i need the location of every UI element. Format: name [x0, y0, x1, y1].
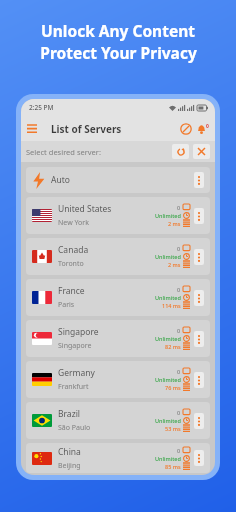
button[interactable]: Brazil: [26, 402, 210, 439]
staticText: 114 ms: [162, 302, 181, 309]
staticText: Unlimited: [155, 417, 181, 424]
staticText: São Paulo: [58, 423, 91, 433]
staticText: Frankfurt: [58, 382, 89, 392]
staticText: Unlimited: [155, 335, 181, 342]
staticText: 2 ms: [168, 261, 181, 268]
button[interactable]: Canada: [26, 238, 210, 275]
staticText: Unlimited: [155, 455, 181, 462]
staticText: Singapore: [58, 326, 99, 338]
staticText: 76 ms: [165, 384, 181, 391]
button[interactable]: Refresh: [172, 144, 189, 159]
button[interactable]: Auto: [26, 167, 210, 193]
staticText: Unlimited: [155, 253, 181, 260]
button[interactable]: More options: [194, 413, 204, 429]
button[interactable]: Notifications: [197, 123, 215, 134]
staticText: Unlimited: [155, 212, 181, 219]
staticText: New York: [58, 218, 89, 228]
staticText: Germany: [58, 367, 95, 379]
button[interactable]: China: [26, 443, 210, 473]
staticText: 0: [177, 245, 181, 252]
staticText: 2:25 PM: [29, 103, 54, 112]
staticText: Auto: [51, 174, 70, 186]
staticText: 0: [177, 327, 181, 334]
button[interactable]: More options: [194, 290, 204, 306]
staticText: United States: [58, 203, 112, 215]
staticText: Select desired server:: [26, 147, 101, 157]
staticText: Paris: [58, 300, 75, 310]
staticText: Protect Your Privacy: [40, 42, 197, 63]
button[interactable]: United States: [26, 197, 210, 234]
staticText: 0: [177, 286, 181, 293]
staticText: Brazil: [58, 408, 81, 420]
staticText: 0: [177, 368, 181, 375]
staticText: 85 ms: [165, 463, 181, 470]
staticText: Singapore: [58, 341, 92, 351]
staticText: 0: [177, 409, 181, 416]
button[interactable]: More options: [194, 172, 204, 188]
button[interactable]: Clear: [193, 144, 210, 159]
staticText: Beijing: [58, 461, 81, 471]
staticText: France: [58, 285, 85, 297]
button[interactable]: More options: [194, 450, 204, 466]
button[interactable]: More options: [194, 331, 204, 347]
staticText: China: [58, 446, 81, 458]
button[interactable]: More options: [194, 249, 204, 265]
button[interactable]: More options: [194, 208, 204, 224]
staticText: Unlock Any Content: [41, 20, 195, 41]
staticText: List of Servers: [51, 122, 122, 136]
staticText: 0: [206, 123, 209, 130]
staticText: 53 ms: [165, 425, 181, 432]
staticText: Toronto: [58, 259, 84, 269]
staticText: Canada: [58, 244, 89, 256]
staticText: 2 ms: [168, 220, 181, 227]
button[interactable]: More options: [194, 372, 204, 388]
button[interactable]: France: [26, 279, 210, 316]
staticText: Unlimited: [155, 376, 181, 383]
staticText: 82 ms: [165, 343, 181, 350]
button[interactable]: Singapore: [26, 320, 210, 357]
button[interactable]: Germany: [26, 361, 210, 398]
button[interactable]: Compass: [175, 118, 197, 140]
staticText: 0: [177, 447, 181, 454]
staticText: 0: [177, 204, 181, 211]
staticText: Unlimited: [155, 294, 181, 301]
button[interactable]: Menu: [21, 118, 43, 140]
